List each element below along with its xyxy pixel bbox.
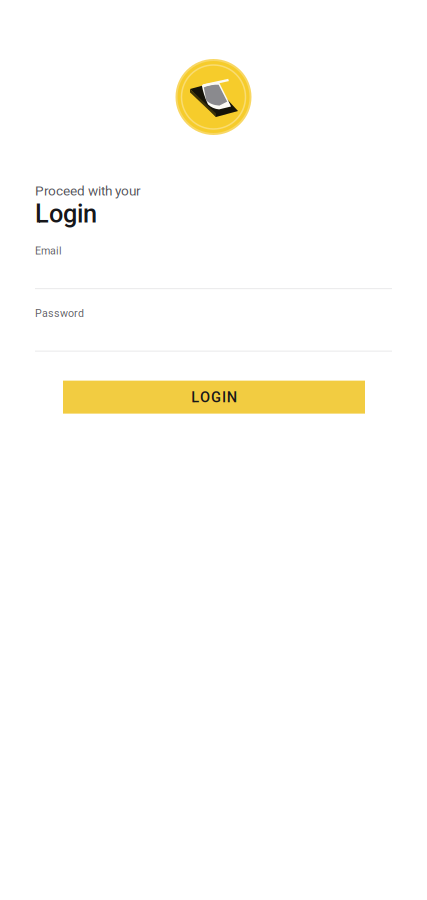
staticText: O <box>200 388 210 406</box>
staticText: Email <box>35 245 62 257</box>
staticText: L <box>191 388 199 406</box>
button[interactable]: L <box>63 381 365 414</box>
staticText: Login <box>35 199 97 229</box>
staticText: Password <box>35 307 84 320</box>
staticText: G <box>211 388 221 406</box>
staticText: Proceed with your <box>35 183 141 199</box>
staticText: N <box>227 388 237 406</box>
staticText: I <box>222 388 226 406</box>
